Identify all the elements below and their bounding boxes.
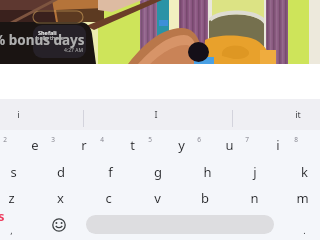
button[interactable]: u — [207, 134, 251, 156]
staticText: v — [154, 189, 161, 207]
staticText: 7 — [245, 135, 249, 144]
button[interactable]: 6 — [177, 128, 221, 150]
staticText: 2 — [3, 135, 7, 144]
button[interactable]: Space — [86, 215, 274, 234]
staticText: b — [201, 189, 209, 207]
button[interactable]: it — [266, 103, 320, 125]
button[interactable]: d — [39, 161, 83, 183]
button[interactable]: Emoji — [52, 218, 66, 232]
button[interactable]: z — [0, 187, 33, 209]
button[interactable]: t — [110, 134, 154, 156]
staticText: Shefali — [38, 29, 57, 36]
staticText: 6 — [197, 135, 201, 144]
button[interactable]: . — [282, 219, 320, 240]
button[interactable]: 2 — [0, 128, 27, 150]
staticText: f — [108, 163, 113, 181]
staticText: y — [178, 136, 185, 154]
staticText: d — [57, 163, 65, 181]
staticText: r — [81, 136, 87, 154]
staticText: h — [203, 163, 212, 181]
staticText: i — [276, 136, 280, 154]
button[interactable]: , — [0, 219, 33, 240]
button[interactable]: h — [185, 161, 229, 183]
staticText: m — [296, 189, 309, 207]
button[interactable]: i — [0, 103, 50, 125]
staticText: s — [0, 207, 5, 225]
staticText: 3 — [51, 135, 55, 144]
button[interactable]: y — [159, 134, 203, 156]
staticText: n — [250, 189, 259, 207]
staticText: c — [105, 189, 112, 207]
button[interactable]: j — [233, 161, 277, 183]
staticText: 4:27 AM — [64, 47, 83, 54]
button[interactable]: r — [62, 134, 106, 156]
button[interactable]: i — [256, 134, 300, 156]
button[interactable]: 8 — [274, 128, 318, 150]
staticText: i — [17, 108, 20, 120]
staticText: % bonus days — [0, 31, 85, 49]
button[interactable]: v — [135, 187, 179, 209]
button[interactable]: 7 — [225, 128, 269, 150]
button[interactable]: x — [38, 187, 82, 209]
staticText: e — [31, 136, 39, 154]
button[interactable]: 3 — [31, 128, 75, 150]
button[interactable]: e — [13, 134, 57, 156]
staticText: it — [295, 108, 301, 120]
staticText: 5 — [148, 135, 152, 144]
staticText: x — [57, 189, 64, 207]
staticText: . — [303, 224, 306, 236]
staticText: s — [10, 163, 17, 181]
staticText: hello there — [36, 34, 64, 41]
button[interactable]: I — [124, 103, 188, 125]
staticText: j — [253, 163, 257, 181]
staticText: 4 — [100, 135, 104, 144]
button[interactable]: g — [136, 161, 180, 183]
staticText: k — [301, 163, 308, 181]
button[interactable]: 5 — [128, 128, 172, 150]
staticText: u — [225, 136, 234, 154]
staticText: I — [154, 108, 158, 120]
staticText: 8 — [294, 135, 298, 144]
button[interactable]: n — [232, 187, 276, 209]
button[interactable]: 4 — [80, 128, 124, 150]
staticText: g — [154, 163, 162, 181]
staticText: t — [130, 136, 135, 154]
button[interactable]: k — [282, 161, 320, 183]
staticText: z — [8, 189, 15, 207]
button[interactable]: s — [0, 161, 35, 183]
button[interactable]: c — [86, 187, 130, 209]
button[interactable]: m — [280, 187, 320, 209]
button[interactable]: w — [0, 134, 9, 156]
button[interactable]: b — [183, 187, 227, 209]
staticText: , — [10, 224, 13, 236]
button[interactable]: f — [88, 161, 132, 183]
